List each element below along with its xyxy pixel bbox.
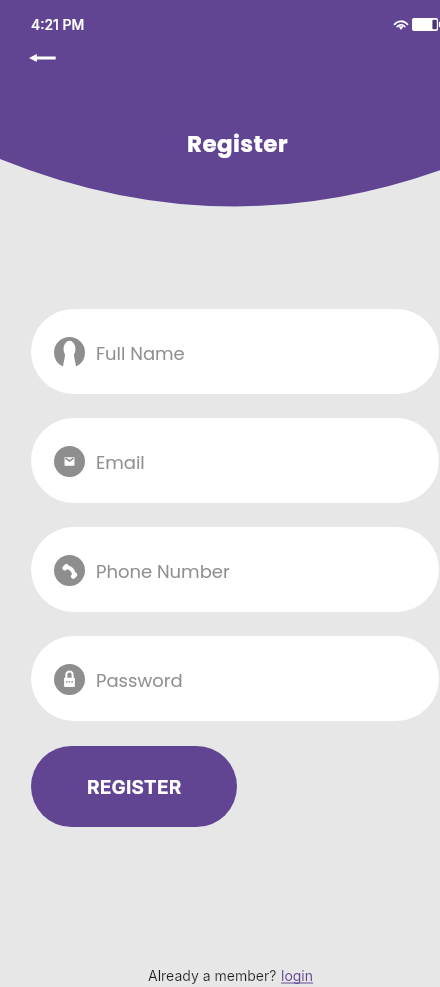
button[interactable]: Back <box>17 40 67 76</box>
staticText: REGISTER <box>87 776 182 799</box>
staticText: login <box>281 967 314 984</box>
staticText: Full Name <box>96 341 185 366</box>
button[interactable]: Email <box>31 418 439 503</box>
button[interactable]: Password <box>31 636 439 721</box>
staticText: 4:21 PM <box>31 16 85 33</box>
staticText: Phone Number <box>96 559 230 584</box>
staticText: Password <box>96 668 183 693</box>
button[interactable]: Phone Number <box>31 527 439 612</box>
button[interactable]: REGISTER <box>31 746 237 827</box>
staticText: Email <box>96 450 145 475</box>
button[interactable]: login <box>281 967 314 984</box>
staticText: Already a member? <box>148 967 281 984</box>
button[interactable]: Full Name <box>31 309 439 394</box>
staticText: Register <box>187 128 288 160</box>
